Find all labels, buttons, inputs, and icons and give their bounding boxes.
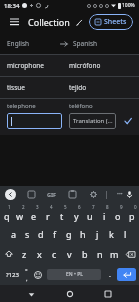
- staticText: c: [52, 248, 57, 260]
- staticText: •••: [117, 191, 123, 198]
- staticText: EN • PL: [66, 271, 83, 278]
- button[interactable]: Voice input: [125, 189, 134, 200]
- button[interactable]: Back: [5, 189, 16, 200]
- button[interactable]: Recents: [100, 286, 116, 302]
- button[interactable]: s: [20, 224, 34, 244]
- button[interactable]: 6: [69, 203, 83, 224]
- staticText: p: [129, 210, 135, 222]
- button[interactable]: m: [107, 244, 122, 264]
- button[interactable]: n: [92, 244, 107, 264]
- button[interactable]: 0: [125, 203, 139, 224]
- button[interactable]: .: [104, 264, 115, 285]
- button[interactable]: More: [114, 189, 125, 200]
- staticText: q: [4, 210, 10, 222]
- staticText: t: [60, 210, 64, 222]
- button[interactable]: tissue: [0, 77, 139, 98]
- staticText: 3: [36, 204, 39, 210]
- button[interactable]: 4: [41, 203, 55, 224]
- staticText: a: [11, 228, 17, 240]
- button[interactable]: j: [90, 224, 104, 244]
- button[interactable]: 2: [13, 203, 27, 224]
- button[interactable]: 8: [97, 203, 111, 224]
- button[interactable]: Stickers: [26, 189, 37, 200]
- staticText: tissue: [7, 83, 69, 92]
- button[interactable]: a: [7, 224, 20, 244]
- staticText: Sheets: [104, 17, 127, 27]
- staticText: h: [80, 228, 86, 240]
- button[interactable]: Menu: [6, 14, 22, 30]
- staticText: 18:34: [4, 2, 20, 10]
- staticText: e: [31, 210, 37, 222]
- staticText: r: [46, 210, 50, 222]
- staticText: micrófono: [69, 61, 101, 70]
- button[interactable]: k: [104, 224, 118, 244]
- button[interactable]: 9: [111, 203, 125, 224]
- staticText: microphone: [7, 61, 69, 70]
- staticText: f: [53, 228, 57, 240]
- button[interactable]: l: [118, 224, 132, 244]
- button[interactable]: Enter: [117, 268, 136, 281]
- staticText: English: [7, 39, 30, 48]
- button[interactable]: microphone: [0, 55, 139, 76]
- button[interactable]: Sheets: [89, 14, 133, 30]
- button[interactable]: Home: [62, 286, 78, 302]
- staticText: 4: [50, 204, 53, 210]
- button[interactable]: Edit title: [73, 16, 85, 28]
- staticText: 2: [22, 204, 25, 210]
- button[interactable]: Back: [23, 286, 39, 302]
- button[interactable]: f: [48, 224, 62, 244]
- button[interactable]: [7, 113, 62, 129]
- staticText: n: [97, 248, 103, 260]
- staticText: i: [103, 210, 106, 222]
- button[interactable]: Confirm: [121, 114, 135, 128]
- staticText: z: [22, 248, 27, 260]
- staticText: Collection: [28, 16, 70, 28]
- button[interactable]: c: [47, 244, 62, 264]
- staticText: tejido: [69, 83, 87, 92]
- button[interactable]: Settings: [88, 189, 99, 200]
- button[interactable]: 5: [55, 203, 69, 224]
- staticText: v: [67, 248, 72, 260]
- button[interactable]: h: [76, 224, 90, 244]
- button[interactable]: v: [62, 244, 77, 264]
- button[interactable]: Translation (...: [69, 113, 116, 129]
- staticText: °: [25, 267, 28, 275]
- button[interactable]: Emoji: [32, 264, 44, 285]
- button[interactable]: Shift: [0, 244, 17, 264]
- staticText: 5: [64, 204, 67, 210]
- button[interactable]: z: [17, 244, 32, 264]
- button[interactable]: ?123: [3, 264, 21, 285]
- button[interactable]: 3: [27, 203, 41, 224]
- button[interactable]: 7: [83, 203, 97, 224]
- staticText: teléfono: [69, 102, 93, 110]
- staticText: ?123: [6, 271, 19, 279]
- staticText: 1: [8, 204, 11, 210]
- staticText: 7: [92, 204, 95, 210]
- staticText: s: [25, 228, 30, 240]
- button[interactable]: EN • PL: [47, 269, 101, 280]
- staticText: 9: [120, 204, 123, 210]
- button[interactable]: g: [62, 224, 76, 244]
- staticText: k: [109, 228, 114, 240]
- button[interactable]: b: [77, 244, 92, 264]
- staticText: 0: [134, 204, 137, 210]
- staticText: b: [82, 248, 88, 260]
- staticText: d: [38, 228, 44, 240]
- staticText: u: [87, 210, 93, 222]
- button[interactable]: GIF: [47, 189, 57, 200]
- button[interactable]: Clipboard: [67, 189, 78, 200]
- staticText: 6: [78, 204, 81, 210]
- button[interactable]: 1: [0, 203, 13, 224]
- staticText: .: [109, 270, 111, 280]
- staticText: o: [115, 210, 121, 222]
- button[interactable]: d: [34, 224, 48, 244]
- staticText: g: [66, 228, 72, 240]
- staticText: y: [74, 210, 79, 222]
- button[interactable]: Backspace: [122, 244, 139, 264]
- button[interactable]: °: [21, 264, 32, 285]
- button[interactable]: x: [32, 244, 47, 264]
- staticText: Spanish: [73, 39, 98, 48]
- staticText: x: [37, 248, 42, 260]
- staticText: 8: [106, 204, 109, 210]
- staticText: GIF: [47, 191, 57, 198]
